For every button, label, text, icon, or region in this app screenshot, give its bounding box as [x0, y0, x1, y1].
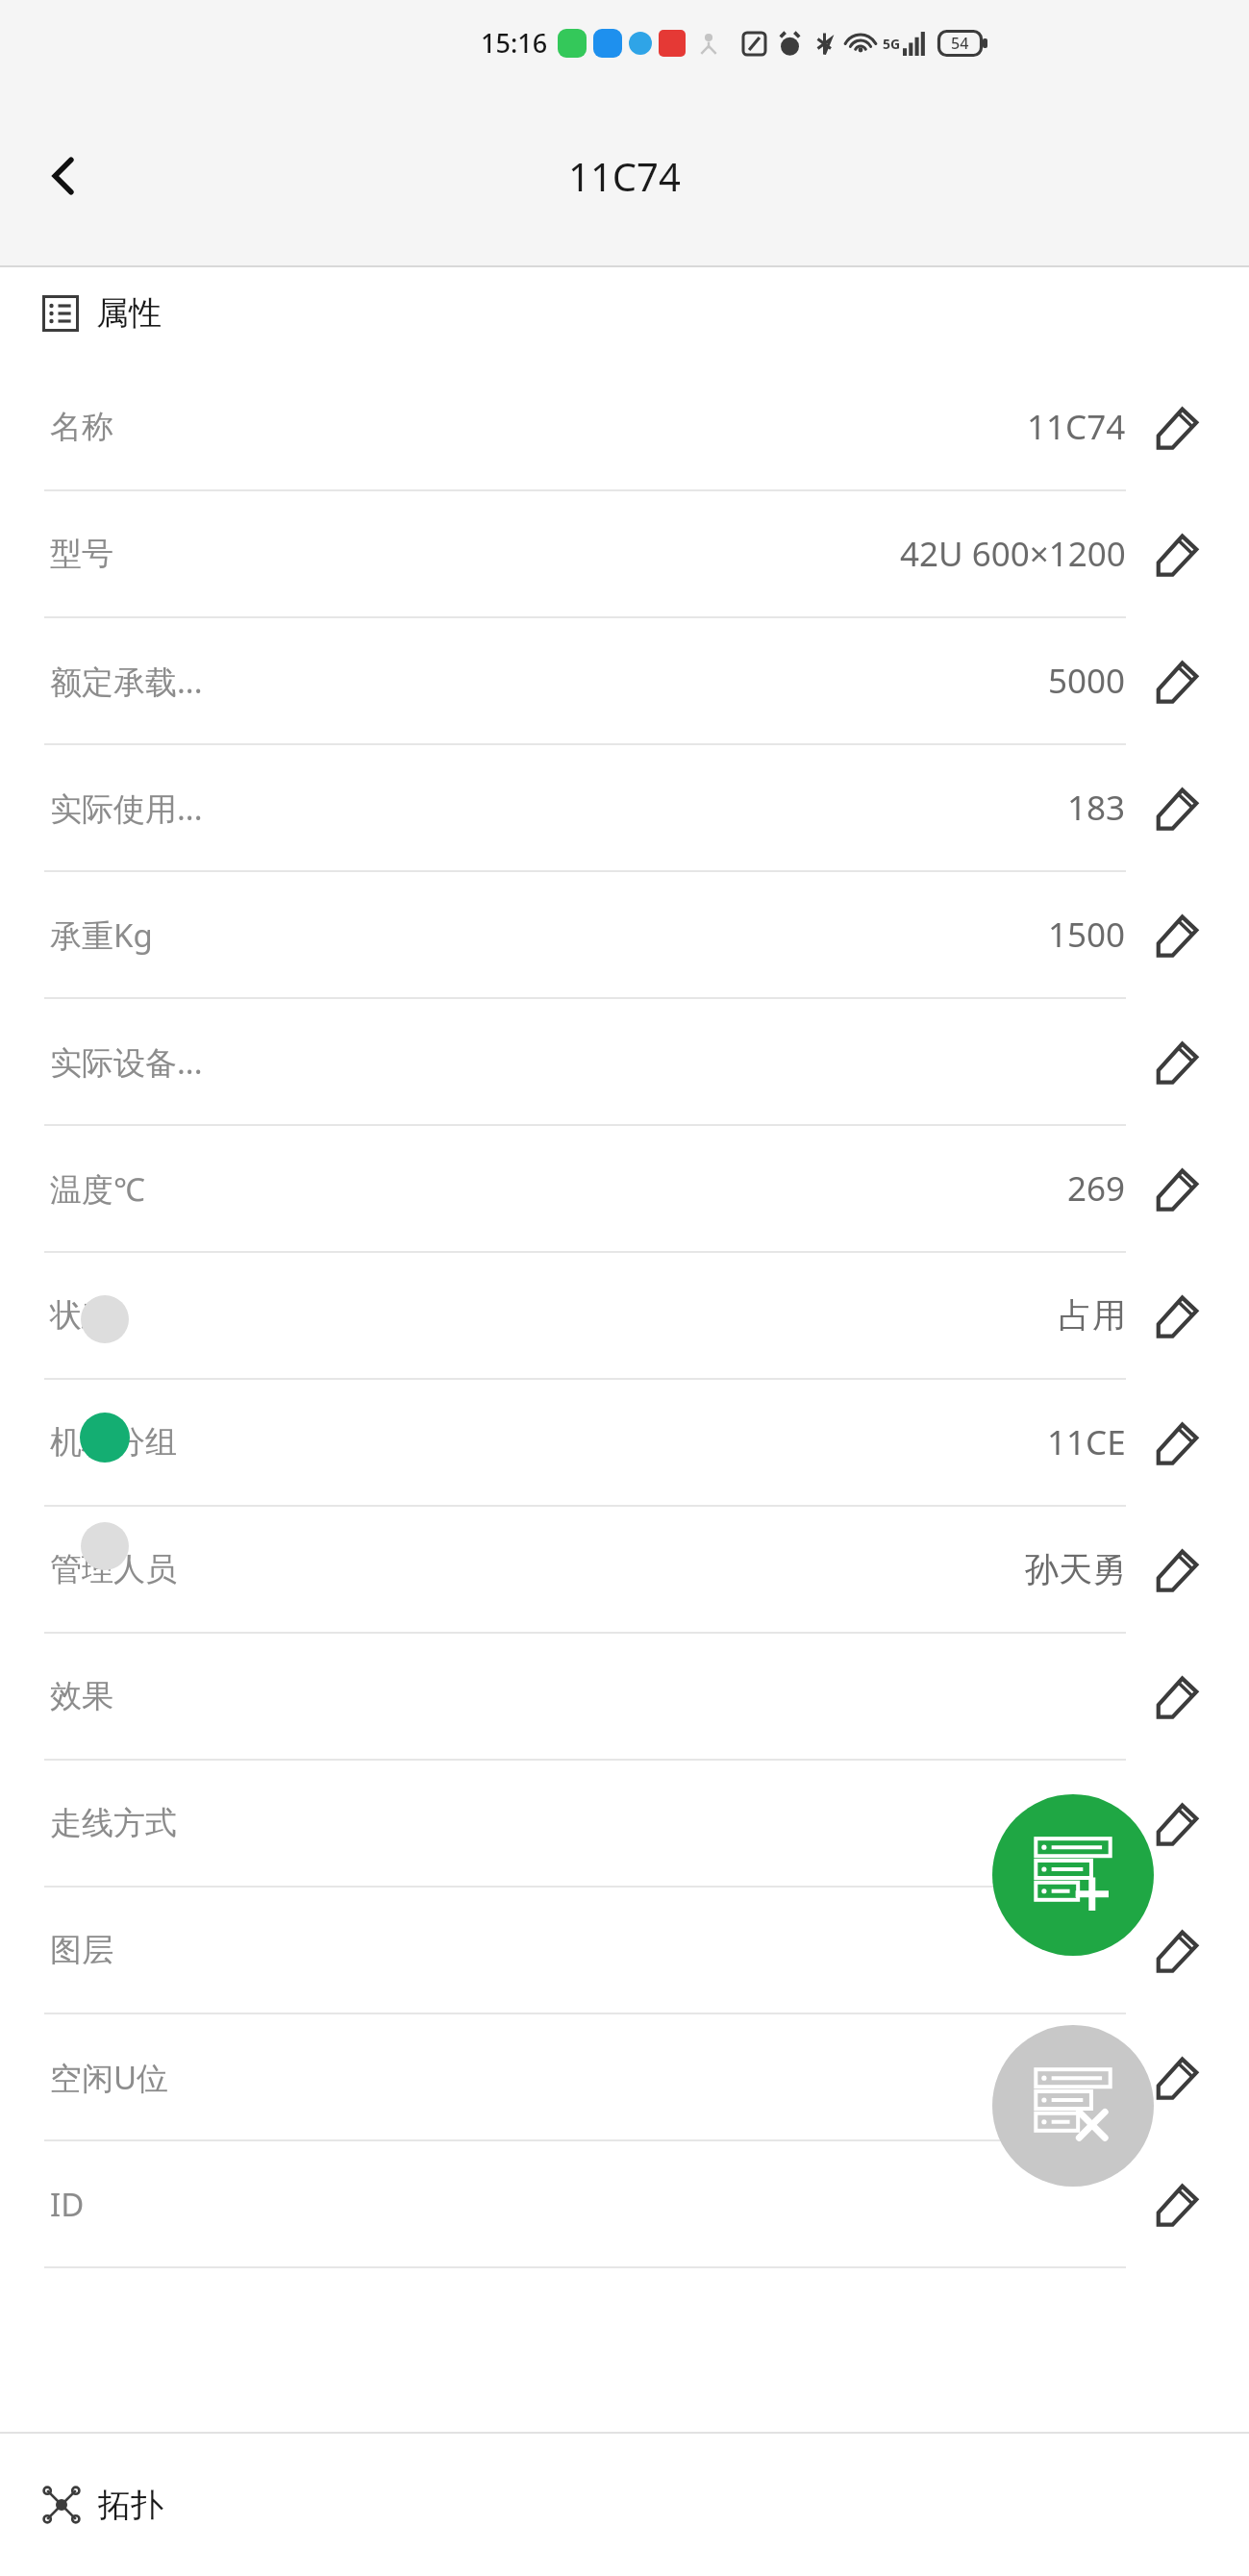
button[interactable]: Edit 走线方式 [1143, 1788, 1212, 1858]
button[interactable]: Edit 型号 [1143, 519, 1212, 588]
button[interactable]: 名称 [0, 364, 1249, 491]
button[interactable]: Edit ID [1143, 2169, 1212, 2238]
staticText: 温度℃ [50, 1167, 1067, 1211]
staticText: 5000 [1048, 658, 1126, 704]
staticText: 实际使用... [50, 787, 1067, 830]
staticText: 42U 600×1200 [900, 531, 1126, 577]
staticText: 效果 [50, 1676, 1126, 1716]
button[interactable]: 机柜分组 [0, 1380, 1249, 1507]
staticText: 上走线 [1025, 1802, 1126, 1844]
button[interactable]: Edit 机柜分组 [1143, 1408, 1212, 1477]
staticText: 承重Kg [50, 913, 1048, 957]
staticText: ID [50, 2183, 1126, 2226]
staticText: 269 [1067, 1165, 1126, 1212]
button[interactable]: Edit 空闲U位 [1143, 2042, 1212, 2112]
staticText: 机柜分组 [50, 1422, 1047, 1463]
button[interactable]: 额定承载... [0, 618, 1249, 745]
button[interactable]: 拓扑 [0, 2434, 1249, 2576]
staticText: 54 [951, 33, 969, 54]
button[interactable]: Edit 图层 [1143, 1915, 1212, 1985]
button[interactable]: 实际使用... [0, 745, 1249, 872]
staticText: 名称 [50, 407, 1027, 447]
staticText: 183 [1067, 785, 1126, 831]
button[interactable]: 实际设备... [0, 999, 1249, 1126]
staticText: 属性 [96, 292, 162, 334]
staticText: 5G [883, 35, 901, 53]
staticText: 状态 [50, 1295, 1059, 1336]
staticText: 占用 [1059, 1294, 1126, 1337]
staticText: 走线方式 [50, 1803, 1025, 1843]
staticText: 拓扑 [98, 2485, 163, 2526]
staticText: 管理人员 [50, 1549, 1025, 1589]
staticText: 11C74 [568, 150, 681, 202]
staticText: 15:16 [481, 25, 548, 61]
button[interactable]: 走线方式 [0, 1761, 1249, 1888]
staticText: 额定承载... [50, 660, 1048, 703]
button[interactable]: 状态 [0, 1253, 1249, 1380]
button[interactable]: Edit 效果 [1143, 1662, 1212, 1731]
button[interactable]: Edit 温度℃ [1143, 1154, 1212, 1223]
button[interactable]: Edit 实际使用... [1143, 773, 1212, 842]
staticText: 孙天勇 [1025, 1548, 1126, 1590]
button[interactable]: Edit 管理人员 [1143, 1535, 1212, 1604]
button[interactable]: 图层 [0, 1888, 1249, 2014]
button[interactable]: Edit 状态 [1143, 1281, 1212, 1350]
button[interactable]: Remove device [992, 2025, 1154, 2187]
staticText: 型号 [50, 534, 900, 574]
staticText: 1500 [1048, 912, 1126, 958]
button[interactable]: ID [0, 2141, 1249, 2268]
button[interactable]: Back [17, 130, 110, 222]
button[interactable]: Add device [992, 1794, 1154, 1956]
button[interactable]: 承重Kg [0, 872, 1249, 999]
button[interactable]: Edit 额定承载... [1143, 646, 1212, 715]
staticText: 11CE [1047, 1419, 1126, 1465]
button[interactable]: 效果 [0, 1634, 1249, 1761]
button[interactable]: 型号 [0, 491, 1249, 618]
button[interactable]: 属性 [0, 267, 1249, 343]
button[interactable]: Edit 实际设备... [1143, 1027, 1212, 1096]
button[interactable]: 温度℃ [0, 1126, 1249, 1253]
staticText: 11C74 [1027, 404, 1126, 450]
button[interactable]: 空闲U位 [0, 2014, 1249, 2141]
staticText: 实际设备... [50, 1040, 1126, 1084]
button[interactable]: Edit 承重Kg [1143, 900, 1212, 969]
button[interactable]: 管理人员 [0, 1507, 1249, 1634]
staticText: 空闲U位 [50, 2056, 1126, 2099]
staticText: 图层 [50, 1930, 1126, 1970]
button[interactable]: Edit 名称 [1143, 392, 1212, 462]
